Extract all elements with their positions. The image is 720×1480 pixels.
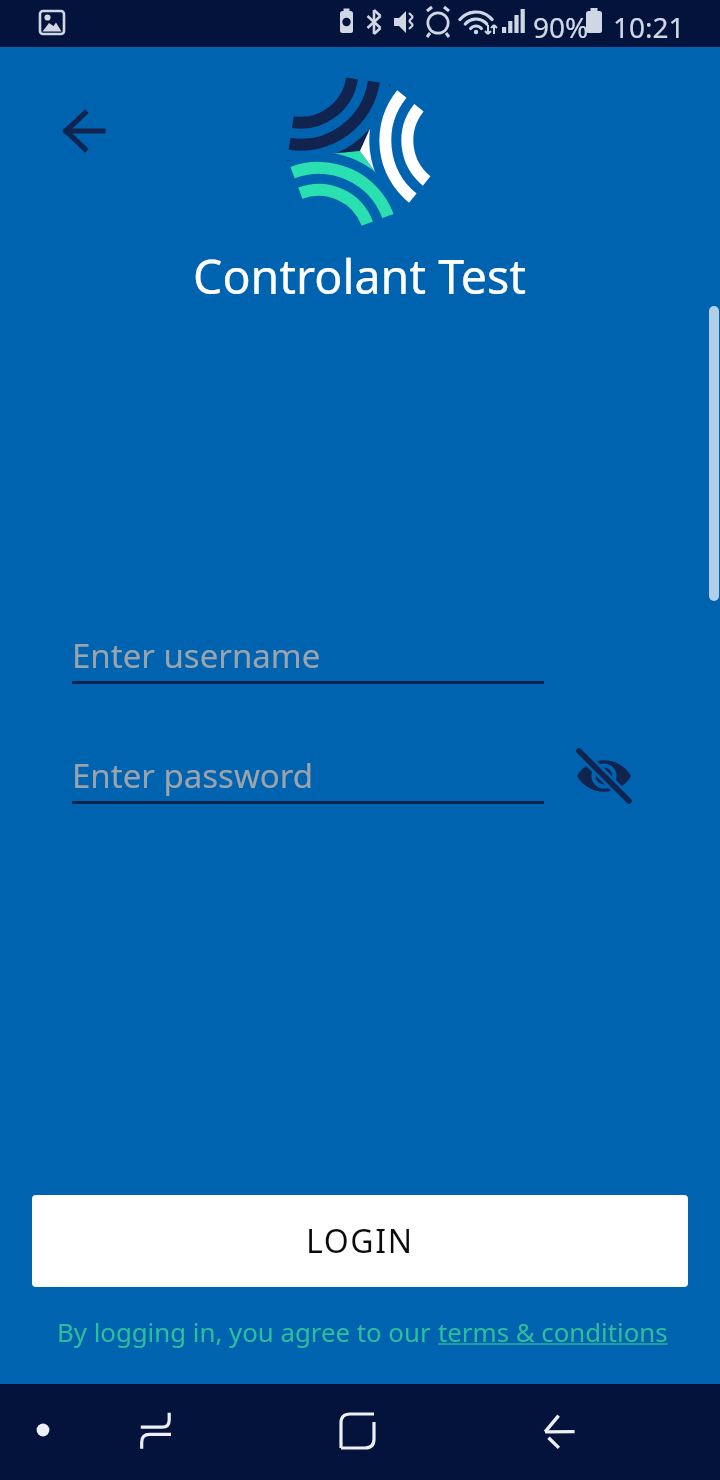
button[interactable]: terms & conditions	[438, 1314, 668, 1349]
button[interactable]: Home	[325, 1398, 389, 1462]
button[interactable]: Recent apps	[124, 1404, 188, 1468]
staticText: 90%	[533, 8, 589, 46]
staticText: Enter username	[72, 633, 321, 678]
staticText: By logging in, you agree to our	[57, 1314, 438, 1349]
staticText: Controlant Test	[193, 244, 527, 307]
staticText: LOGIN	[306, 1219, 414, 1263]
staticText: 10:21	[613, 8, 685, 46]
staticText: Enter password	[72, 753, 314, 798]
button[interactable]: Enter password	[72, 745, 544, 804]
button[interactable]: Enter username	[72, 625, 544, 684]
button[interactable]: Back	[528, 1385, 592, 1449]
button[interactable]: LOGIN	[32, 1195, 688, 1287]
button[interactable]: Back	[36, 83, 132, 179]
button[interactable]: Notifications	[11, 1398, 75, 1462]
button[interactable]: Show password	[570, 742, 638, 810]
